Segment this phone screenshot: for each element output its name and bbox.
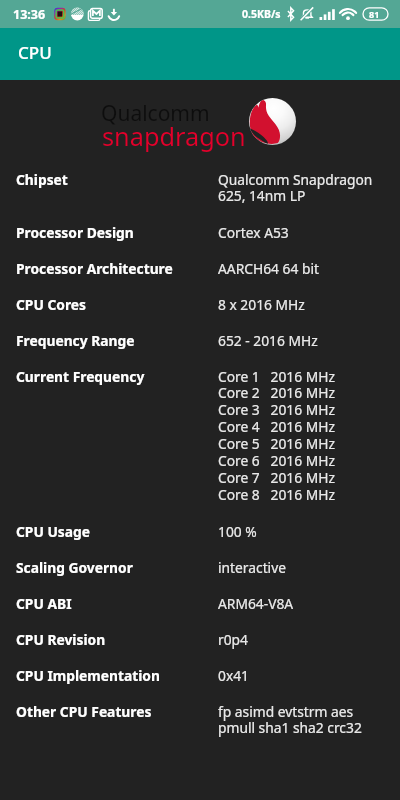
staticText: fp asimd evtstrm aes pmull sha1 sha2 crc… bbox=[218, 702, 362, 737]
staticText: 100 % bbox=[218, 522, 257, 541]
button[interactable]: Scaling Governor bbox=[0, 558, 400, 594]
staticText: Processor Architecture bbox=[16, 259, 173, 278]
button[interactable]: CPU Usage bbox=[0, 522, 400, 558]
staticText: Chipset bbox=[16, 170, 68, 189]
staticText: Current Frequency bbox=[16, 367, 145, 386]
staticText: snapdragon bbox=[102, 119, 246, 153]
staticText: CPU bbox=[18, 41, 52, 64]
staticText: Cortex A53 bbox=[218, 223, 289, 242]
button[interactable]: Other CPU Features bbox=[0, 702, 400, 755]
staticText: Other CPU Features bbox=[16, 702, 152, 721]
button[interactable]: CPU Implementation bbox=[0, 666, 400, 702]
button[interactable]: CPU Cores bbox=[0, 295, 400, 331]
staticText: 0.5KB/s bbox=[242, 7, 281, 21]
staticText: 8 x 2016 MHz bbox=[218, 295, 305, 314]
staticText: Processor Design bbox=[16, 223, 134, 242]
button[interactable]: CPU Revision bbox=[0, 630, 400, 666]
button[interactable]: Processor Design bbox=[0, 223, 400, 259]
button[interactable]: CPU ABI bbox=[0, 594, 400, 630]
staticText: 13:36 bbox=[13, 6, 46, 23]
staticText: AARCH64 64 bit bbox=[218, 259, 319, 278]
staticText: CPU ABI bbox=[16, 594, 72, 613]
staticText: 652 - 2016 MHz bbox=[218, 331, 318, 350]
button[interactable]: Chipset bbox=[0, 170, 400, 223]
staticText: 81 bbox=[369, 8, 380, 20]
button[interactable]: CPU bbox=[0, 28, 400, 80]
staticText: CPU Revision bbox=[16, 630, 106, 649]
staticText: Scaling Governor bbox=[16, 558, 133, 577]
staticText: Qualcomm Snapdragon 625, 14nm LP bbox=[218, 170, 373, 205]
staticText: Qualcomm bbox=[101, 99, 210, 128]
staticText: ARM64-V8A bbox=[218, 594, 294, 613]
staticText: r0p4 bbox=[218, 630, 248, 649]
staticText: interactive bbox=[218, 558, 286, 577]
button[interactable]: Frequency Range bbox=[0, 331, 400, 367]
staticText: Core 1 2016 MHz Core 2 2016 MHz Core 3 2… bbox=[218, 367, 335, 504]
staticText: CPU Implementation bbox=[16, 666, 160, 685]
button[interactable]: Current Frequency bbox=[0, 367, 400, 522]
staticText: CPU Cores bbox=[16, 295, 86, 314]
button[interactable]: Processor Architecture bbox=[0, 259, 400, 295]
staticText: 0x41 bbox=[218, 666, 249, 685]
staticText: Frequency Range bbox=[16, 331, 135, 350]
staticText: CPU Usage bbox=[16, 522, 91, 541]
